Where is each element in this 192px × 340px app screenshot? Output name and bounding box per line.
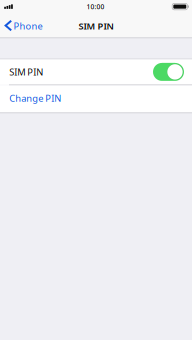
staticText: 10:00 (86, 2, 104, 11)
button[interactable]: Change PIN (0, 85, 192, 112)
staticText: Change PIN (9, 92, 61, 104)
staticText: SIM PIN (78, 20, 113, 32)
button[interactable]: SIM PIN, on (153, 63, 184, 81)
staticText: Phone (14, 20, 43, 32)
staticText: SIM PIN (9, 66, 43, 78)
button[interactable]: SIM PIN (0, 59, 192, 84)
button[interactable]: Phone (0, 12, 49, 37)
